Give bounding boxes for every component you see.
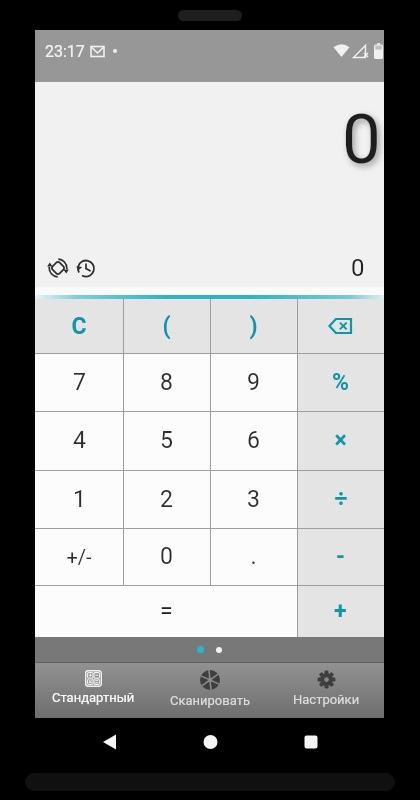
staticText: Сканировать — [170, 693, 250, 708]
staticText: 5 — [160, 427, 173, 454]
staticText: ÷ — [334, 486, 348, 513]
button[interactable]: 1 — [35, 470, 123, 528]
staticText: +/- — [66, 545, 92, 568]
staticText: - — [336, 543, 345, 570]
button[interactable]: Настройки — [268, 662, 384, 718]
button[interactable]: 0 — [123, 528, 210, 585]
staticText: C — [71, 313, 87, 340]
staticText: 0 — [342, 99, 381, 180]
button[interactable]: ÷ — [297, 470, 384, 528]
staticText: 23:17 — [45, 42, 85, 60]
staticText: 3 — [247, 486, 260, 513]
button[interactable]: 7 — [35, 353, 123, 411]
staticText: + — [334, 598, 347, 625]
button[interactable]: × — [297, 411, 384, 470]
staticText: 0 — [160, 543, 173, 570]
button[interactable]: 4 — [35, 411, 123, 470]
staticText: . — [250, 543, 257, 570]
staticText: Настройки — [293, 692, 360, 707]
staticText: 2 — [160, 486, 173, 513]
button[interactable]: 9 — [210, 353, 297, 411]
button[interactable]: - — [297, 528, 384, 585]
button[interactable]: 5 — [123, 411, 210, 470]
button[interactable]: Стандартный — [35, 662, 152, 718]
staticText: 0 — [351, 254, 365, 282]
button[interactable]: . — [210, 528, 297, 585]
button[interactable]: + — [297, 585, 384, 637]
staticText: 1 — [73, 486, 86, 513]
button[interactable]: 8 — [123, 353, 210, 411]
button[interactable]: % — [297, 353, 384, 411]
button[interactable]: 6 — [210, 411, 297, 470]
button[interactable]: +/- — [35, 528, 123, 585]
staticText: 7 — [73, 369, 86, 396]
button[interactable]: = — [35, 585, 297, 637]
staticText: 4 — [73, 427, 86, 454]
staticText: = — [160, 598, 173, 625]
staticText: 8 — [160, 369, 173, 396]
staticText: Стандартный — [52, 690, 135, 705]
button[interactable]: 3 — [210, 470, 297, 528]
staticText: 9 — [247, 369, 260, 396]
staticText: ( — [162, 313, 171, 340]
button[interactable] — [76, 259, 95, 278]
button[interactable]: Сканировать — [152, 662, 268, 718]
button[interactable]: 2 — [123, 470, 210, 528]
staticText: % — [332, 369, 349, 396]
button[interactable]: ( — [123, 299, 210, 353]
button[interactable]: C — [35, 299, 123, 353]
button[interactable] — [297, 299, 384, 353]
staticText: ) — [249, 313, 258, 340]
button[interactable] — [48, 258, 68, 278]
staticText: × — [334, 427, 347, 454]
button[interactable]: ) — [210, 299, 297, 353]
staticText: 6 — [247, 427, 260, 454]
